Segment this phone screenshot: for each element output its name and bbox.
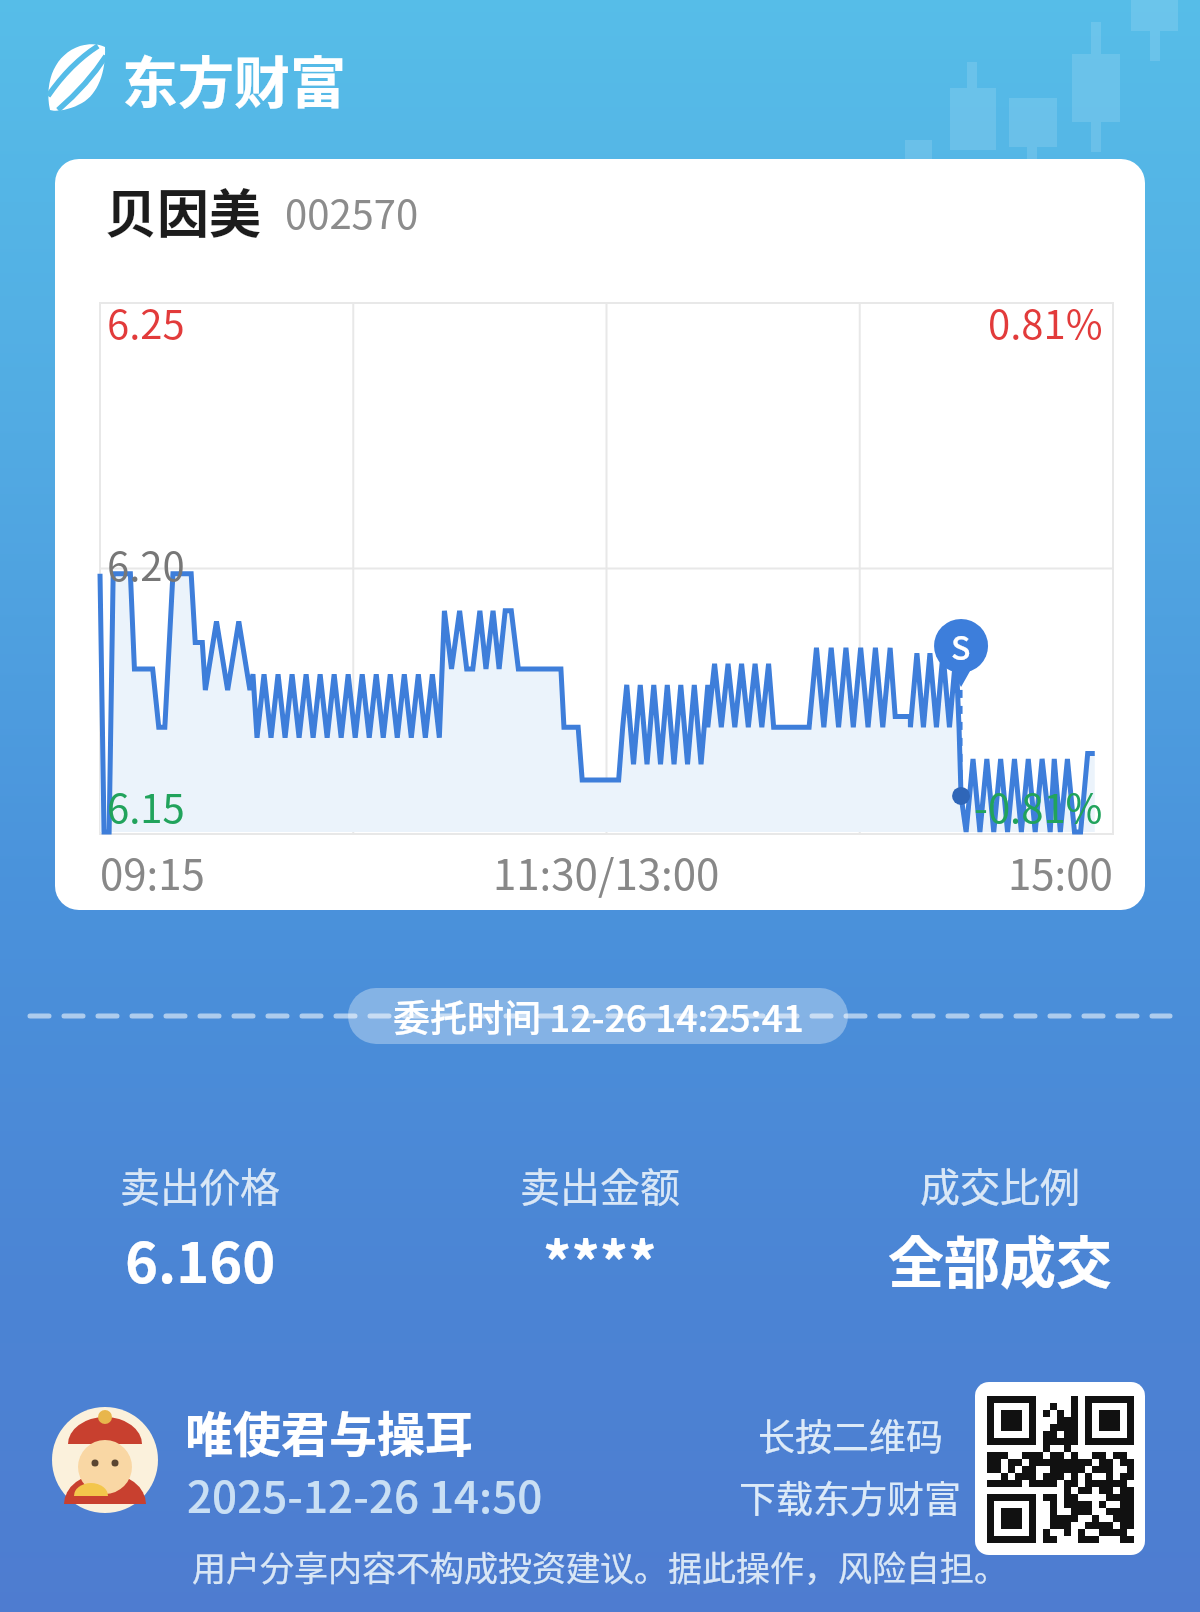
staticText: 0.81% (988, 293, 1103, 351)
staticText: 委托时间 12-26 14:25:41 (393, 989, 804, 1043)
staticText: 6.160 (125, 1218, 276, 1299)
staticText: 东方财富 (122, 38, 346, 119)
staticText: 09:15 (100, 841, 205, 902)
staticText: 002570 (285, 183, 419, 241)
staticText: 6.15 (107, 777, 185, 835)
staticText: 贝因美 (105, 173, 262, 248)
staticText: 长按二维码 (758, 1408, 943, 1462)
staticText: 卖出金额 (520, 1156, 680, 1214)
staticText: 11:30/13:00 (493, 841, 720, 902)
staticText: **** (543, 1218, 657, 1299)
button[interactable]: 贝因美 (55, 159, 1145, 910)
staticText: S (951, 623, 971, 669)
button[interactable] (975, 1382, 1145, 1555)
staticText: -0.81% (974, 777, 1103, 835)
staticText: 唯使君与操耳 (185, 1396, 474, 1466)
staticText: 成交比例 (920, 1156, 1080, 1214)
staticText: 6.25 (107, 293, 185, 351)
staticText: 2025-12-26 14:50 (187, 1462, 543, 1526)
staticText: 6.20 (107, 535, 185, 593)
staticText: 用户分享内容不构成投资建议。据此操作，风险自担。 (192, 1542, 1008, 1591)
staticText: 全部成交 (888, 1218, 1112, 1299)
staticText: 15:00 (1008, 841, 1113, 902)
staticText: 下载东方财富 (739, 1470, 961, 1524)
staticText: 卖出价格 (120, 1156, 280, 1214)
button[interactable]: 委托时间 12-26 14:25:41 (348, 988, 848, 1044)
